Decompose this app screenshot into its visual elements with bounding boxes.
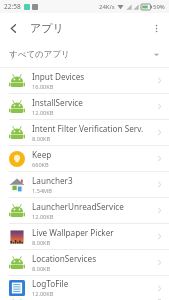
staticText: 59% (153, 3, 165, 11)
button[interactable]: InstallService (0, 94, 169, 120)
button[interactable]: Input Devices (0, 68, 169, 94)
staticText: 12.00KB (32, 109, 54, 117)
staticText: すべてのアプリ (9, 49, 70, 60)
staticText: 8.00KB (32, 135, 51, 143)
button[interactable]: すべてのアプリ (0, 42, 169, 67)
staticText: Input Devices (32, 71, 85, 82)
staticText: 660KB (32, 161, 49, 169)
staticText: InstallService (32, 97, 83, 108)
staticText: Launcher3 (32, 175, 73, 186)
staticText: 16.00KB (32, 83, 54, 91)
button[interactable]: Launcher3 (0, 172, 169, 198)
staticText: LauncherUnreadService (32, 201, 124, 212)
staticText: アプリ (30, 21, 64, 35)
staticText: Keep (32, 149, 52, 160)
button[interactable]: Live Wallpaper Picker (0, 224, 169, 250)
button[interactable]: Intent Filter Verification Serv. (0, 120, 169, 146)
button[interactable]: Keep (0, 146, 169, 172)
staticText: Live Wallpaper Picker (32, 227, 114, 238)
button[interactable]: LocationServices (0, 250, 169, 276)
button[interactable]: LogToFile (0, 276, 169, 300)
staticText: 8.00KB (32, 239, 51, 247)
button[interactable]: More options (143, 15, 169, 41)
button[interactable]: LauncherUnreadService (0, 198, 169, 224)
staticText: LogToFile (32, 278, 69, 289)
staticText: 24K/s (99, 3, 115, 11)
staticText: 12.00KB (32, 290, 54, 298)
staticText: 12.00KB (32, 213, 54, 221)
staticText: 1.54MB (32, 187, 52, 195)
staticText: 8.00KB (32, 265, 51, 273)
button[interactable]: Back (0, 15, 26, 41)
staticText: Intent Filter Verification Serv. (32, 123, 144, 134)
staticText: 22:58 (4, 2, 21, 11)
staticText: LocationServices (32, 253, 97, 264)
